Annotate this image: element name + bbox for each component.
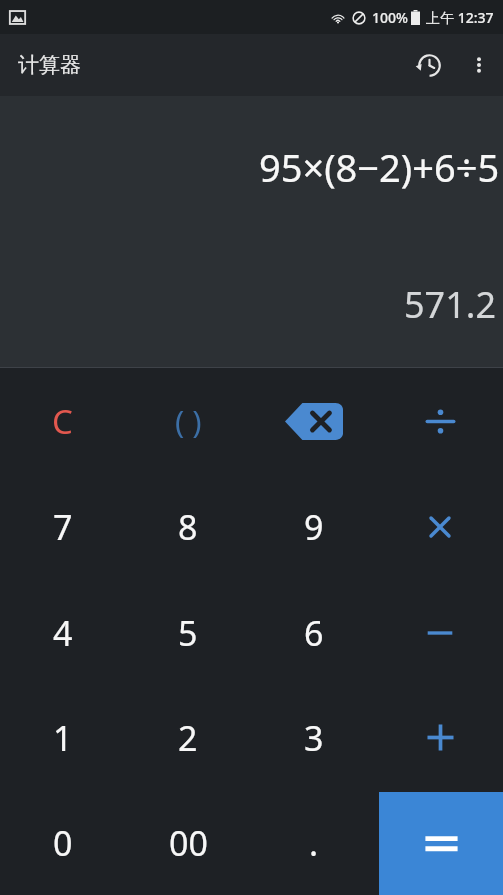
button[interactable]: 6 <box>251 580 377 685</box>
staticText: 计算器 <box>18 52 81 78</box>
staticText: 9 <box>304 504 324 550</box>
button[interactable]: Backspace <box>251 368 377 474</box>
button[interactable]: 3 <box>251 685 377 790</box>
button[interactable]: . <box>251 790 377 895</box>
button[interactable]: 2 <box>125 685 251 790</box>
staticText: 00 <box>169 820 208 866</box>
staticText: . <box>309 820 319 866</box>
button[interactable]: C <box>0 368 125 474</box>
button[interactable]: 0 <box>0 790 125 895</box>
button[interactable]: 4 <box>0 580 125 685</box>
button[interactable]: Parentheses <box>125 368 251 474</box>
button[interactable]: 8 <box>125 474 251 580</box>
button[interactable]: Minus <box>377 580 503 685</box>
staticText: 571.2 <box>404 280 497 329</box>
staticText: 100% <box>372 8 408 27</box>
button[interactable]: More options <box>455 41 503 89</box>
staticText: 2 <box>178 715 198 761</box>
button[interactable]: Plus <box>377 685 503 790</box>
staticText: 5 <box>178 610 198 656</box>
button[interactable]: Multiply <box>377 474 503 580</box>
staticText: 8 <box>178 504 198 550</box>
button[interactable]: 00 <box>125 790 251 895</box>
staticText: C <box>52 399 73 444</box>
button[interactable]: 1 <box>0 685 125 790</box>
staticText: 4 <box>53 610 73 656</box>
button[interactable]: History <box>403 39 455 91</box>
staticText: 3 <box>304 715 324 761</box>
staticText: 95×(8−2)+6÷5 <box>259 141 500 193</box>
button[interactable]: 7 <box>0 474 125 580</box>
staticText: 上午 12:37 <box>426 8 494 27</box>
button[interactable]: 5 <box>125 580 251 685</box>
button[interactable]: Divide <box>377 368 503 474</box>
staticText: 6 <box>304 610 324 656</box>
button[interactable]: 9 <box>251 474 377 580</box>
staticText: 7 <box>53 504 73 550</box>
staticText: 0 <box>53 820 73 866</box>
staticText: 1 <box>53 715 73 761</box>
button[interactable]: Equals <box>379 792 503 895</box>
staticText: ( ) <box>175 400 202 442</box>
